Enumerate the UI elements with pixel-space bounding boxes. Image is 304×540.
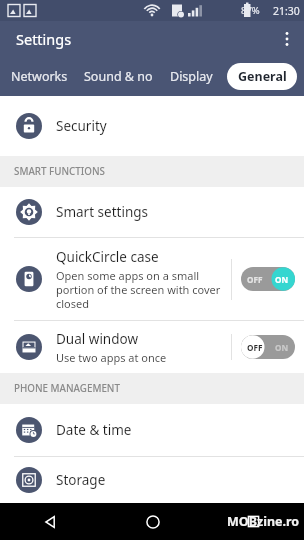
button[interactable]: Home	[102, 503, 203, 540]
button[interactable]: Toggle on	[232, 238, 304, 320]
staticText: Security	[56, 117, 107, 135]
staticText: Display	[170, 68, 213, 85]
staticText: ON	[275, 274, 289, 285]
staticText: Storage	[56, 471, 106, 489]
button[interactable]: Dual window	[0, 321, 304, 373]
button[interactable]: QuickCircle case	[0, 238, 304, 320]
button[interactable]: Toggle off	[232, 321, 304, 373]
staticText: PHONE MANAGEMENT	[14, 382, 120, 395]
staticText: QuickCircle case	[56, 248, 159, 266]
staticText: General	[238, 68, 287, 85]
staticText: OFF	[247, 342, 263, 353]
staticText: SMART FUNCTIONS	[14, 165, 105, 178]
button[interactable]: Display	[158, 57, 224, 96]
button[interactable]: Networks	[0, 57, 78, 96]
button[interactable]: Date & time	[0, 404, 304, 456]
staticText: Open some apps on a small portion of the…	[56, 268, 223, 311]
button[interactable]: Sound & no	[78, 57, 158, 96]
button[interactable]: Recent apps	[203, 503, 304, 540]
button[interactable]: Storage	[0, 457, 304, 503]
staticText: Smart settings	[56, 203, 148, 221]
staticText: ON	[275, 342, 289, 353]
staticText: Sound & no	[84, 68, 153, 85]
staticText: 87%	[241, 4, 260, 17]
staticText: OFF	[247, 274, 263, 285]
button[interactable]: Security	[0, 96, 304, 156]
staticText: Use two apps at once	[56, 350, 167, 365]
staticText: Networks	[11, 68, 68, 85]
staticText: Dual window	[56, 330, 139, 348]
button[interactable]: General	[227, 63, 297, 90]
button[interactable]: Smart settings	[0, 187, 304, 237]
button[interactable]: Back	[0, 503, 102, 540]
staticText: MOBzine.ro	[227, 513, 300, 530]
staticText: Date & time	[56, 421, 132, 439]
staticText: 21:30	[273, 4, 300, 18]
staticText: Settings	[16, 29, 72, 49]
button[interactable]: More options	[270, 22, 304, 56]
